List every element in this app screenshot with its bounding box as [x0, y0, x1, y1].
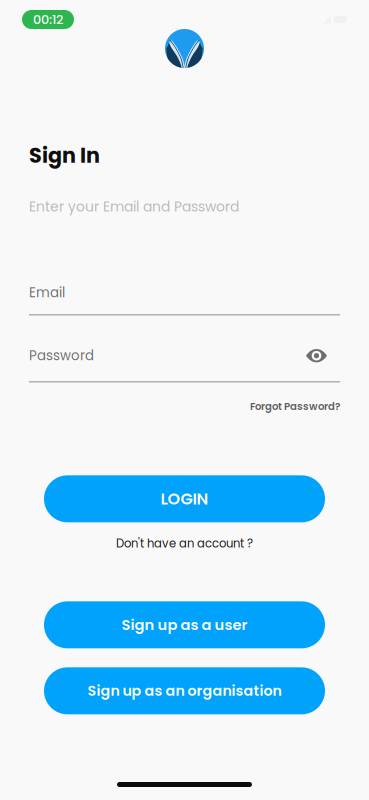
staticText: Password — [29, 346, 94, 365]
button[interactable]: Sign up as an organisation — [44, 667, 325, 714]
staticText: Sign In — [29, 141, 100, 170]
staticText: Enter your Email and Password — [29, 197, 239, 216]
staticText: Sign up as an organisation — [87, 681, 281, 701]
button[interactable]: Forgot Password? — [0, 397, 369, 415]
staticText: 00:12 — [33, 10, 63, 28]
staticText: LOGIN — [160, 488, 208, 510]
button[interactable]: Sign up as a user — [44, 601, 325, 648]
button[interactable]: LOGIN — [44, 475, 325, 522]
button[interactable]: Show password — [306, 347, 340, 365]
staticText: Don't have an account ? — [116, 535, 253, 551]
staticText: Email — [29, 283, 65, 302]
staticText: Sign up as a user — [121, 615, 247, 635]
staticText: Forgot Password? — [250, 399, 340, 413]
button[interactable]: Don't have an account ? — [116, 532, 253, 554]
